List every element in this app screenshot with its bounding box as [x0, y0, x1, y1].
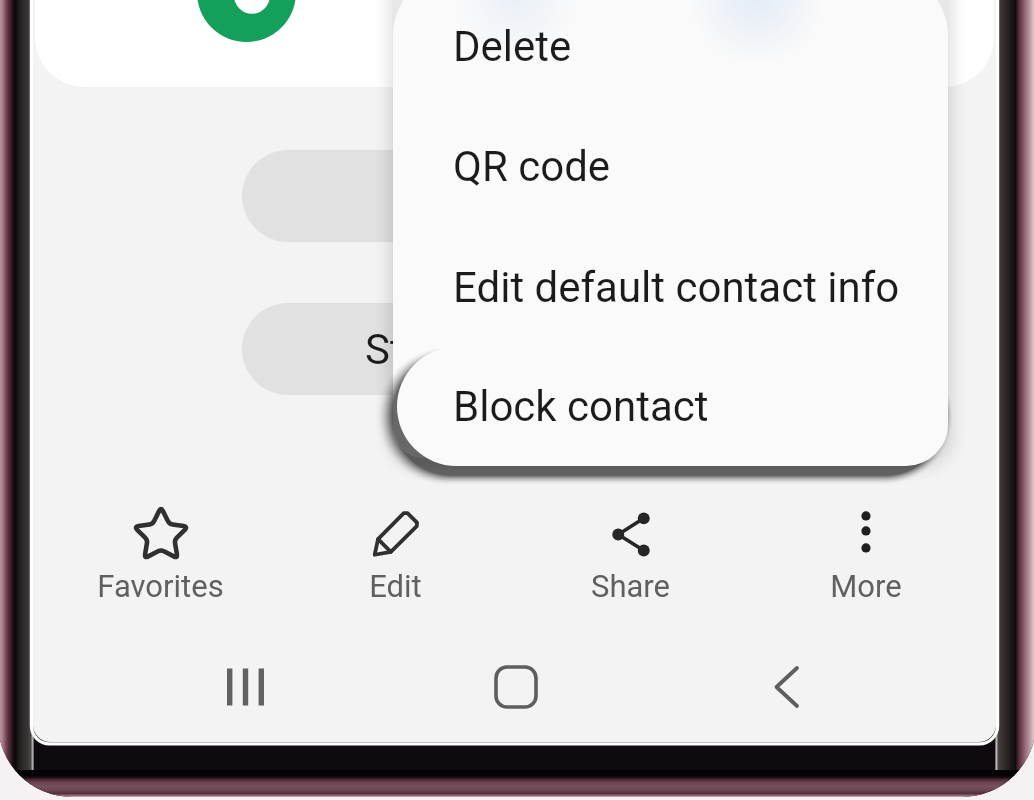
staticText: Edit default contact info [453, 263, 900, 312]
staticText: Favorites [97, 568, 224, 604]
button[interactable]: QR code [393, 111, 948, 221]
staticText: More [830, 568, 902, 604]
button[interactable]: Edit default contact info [393, 232, 948, 342]
button[interactable]: Back [717, 637, 857, 737]
staticText: St [365, 325, 404, 374]
staticText: Delete [453, 22, 572, 71]
staticText: Block contact [453, 382, 709, 431]
button[interactable]: Call [197, 0, 296, 42]
staticText: QR code [453, 142, 611, 191]
staticText: Edit [369, 568, 422, 604]
button[interactable]: Delete [393, 0, 948, 101]
button[interactable]: Block contact [397, 347, 948, 466]
button[interactable]: Block contact [393, 352, 948, 458]
button[interactable]: More [748, 483, 983, 620]
staticText: Share [591, 568, 670, 604]
button[interactable]: Home [446, 637, 586, 737]
button[interactable]: Favorites [43, 483, 278, 620]
button[interactable]: Share [513, 483, 748, 620]
button[interactable]: Edit [278, 483, 513, 620]
button[interactable]: Recents [175, 637, 315, 737]
